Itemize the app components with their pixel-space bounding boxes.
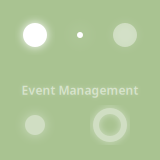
staticText: Event Management (21, 82, 138, 98)
